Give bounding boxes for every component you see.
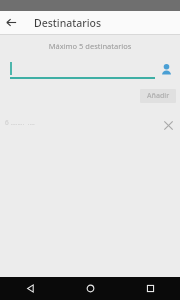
staticText: Destinatarios xyxy=(34,16,102,30)
button[interactable]: Home xyxy=(60,277,120,300)
button[interactable]: Remove xyxy=(159,116,177,134)
button[interactable]: Añadir xyxy=(140,89,176,103)
staticText: 6 ........ .... xyxy=(5,118,35,127)
staticText: Máximo 5 destinatarios xyxy=(0,41,180,51)
button[interactable]: Back xyxy=(0,11,23,34)
button[interactable] xyxy=(8,60,157,79)
staticText: Añadir xyxy=(147,91,170,101)
button[interactable]: Choose contact xyxy=(158,61,175,78)
button[interactable]: Recent apps xyxy=(120,277,180,300)
button[interactable]: Back xyxy=(0,277,60,300)
